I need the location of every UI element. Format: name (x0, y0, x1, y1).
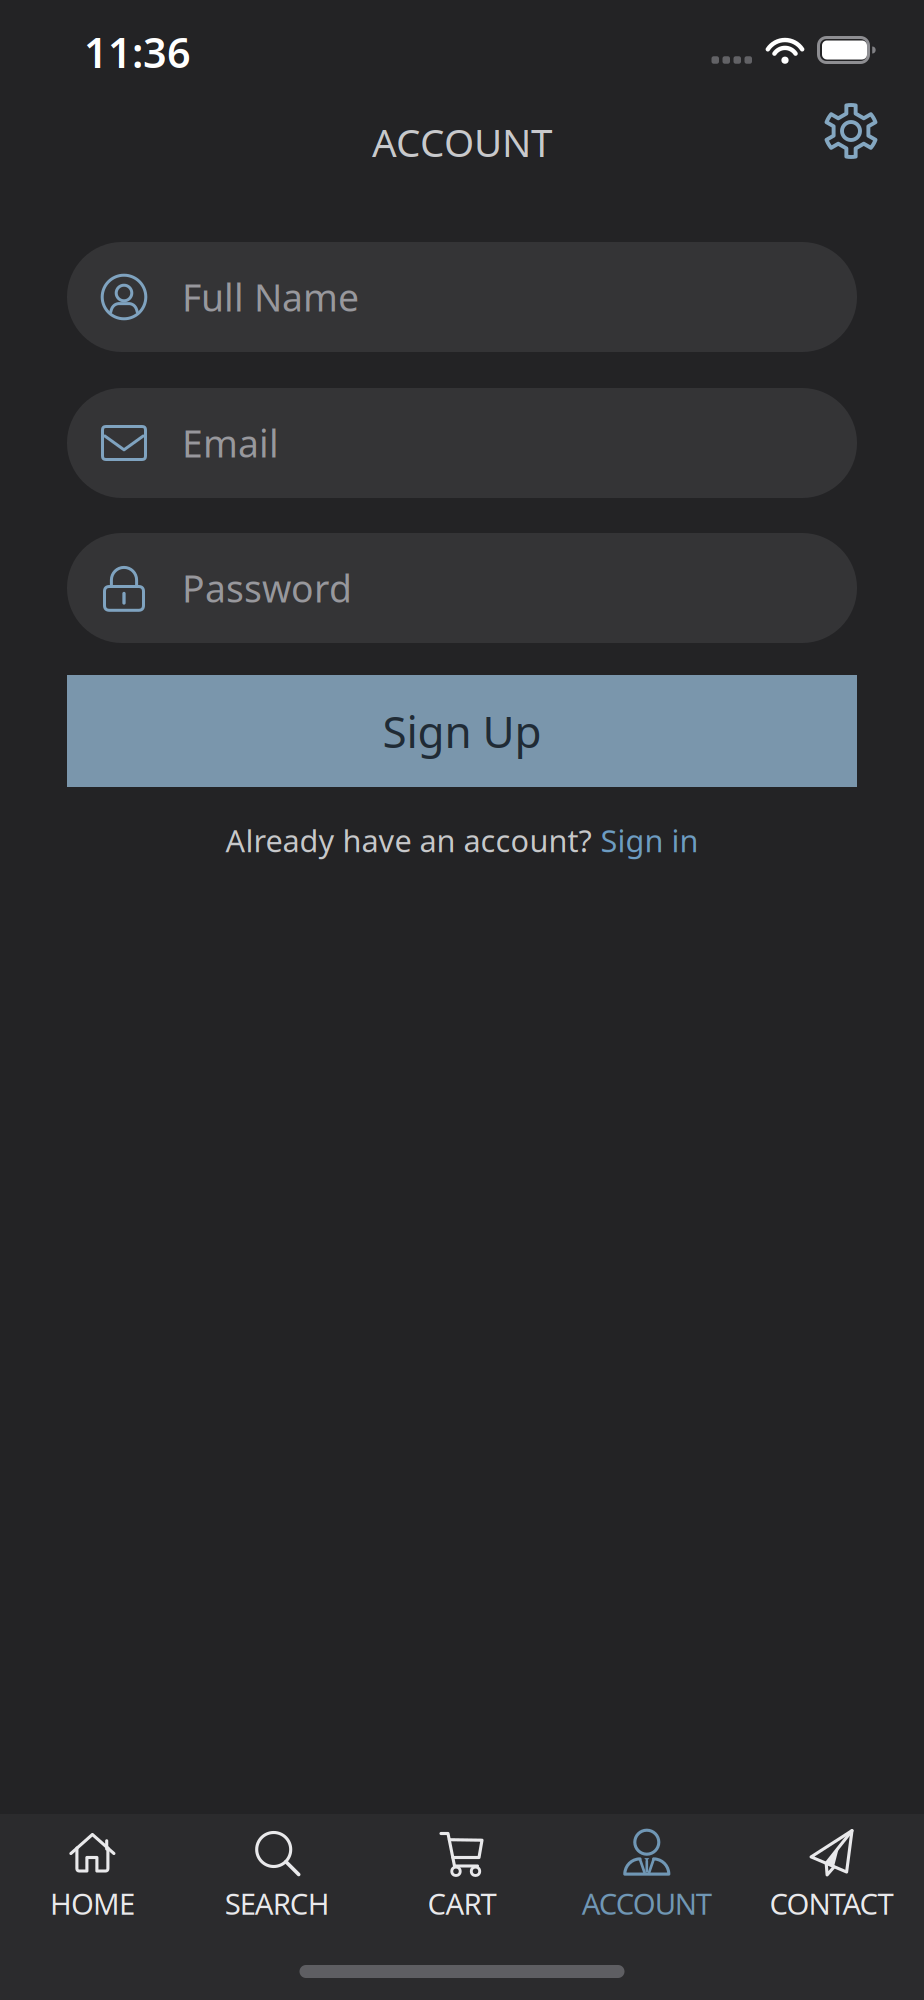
button[interactable]: SEARCH (185, 1830, 370, 1923)
staticText: ACCOUNT (582, 1884, 712, 1923)
staticText: Sign Up (382, 702, 541, 760)
button[interactable]: Full Name (67, 242, 857, 352)
button[interactable]: Sign Up (67, 675, 857, 787)
button[interactable]: Sign in (600, 820, 698, 861)
button[interactable]: CONTACT (739, 1830, 924, 1923)
button[interactable]: Email (67, 388, 857, 498)
button[interactable]: CART (370, 1830, 554, 1923)
button[interactable]: Settings (824, 104, 878, 158)
button[interactable]: ACCOUNT (554, 1830, 739, 1923)
button[interactable]: HOME (0, 1830, 185, 1923)
staticText: Already have an account? (225, 820, 591, 861)
staticText: Email (182, 418, 279, 468)
staticText: Full Name (182, 272, 359, 322)
button[interactable]: Password (67, 533, 857, 643)
staticText: Password (182, 563, 352, 613)
staticText: CART (427, 1884, 496, 1923)
staticText: Sign in (600, 820, 698, 861)
staticText: 11:36 (84, 25, 191, 79)
staticText: SEARCH (225, 1884, 330, 1923)
staticText: ACCOUNT (372, 116, 552, 168)
staticText: HOME (50, 1884, 135, 1923)
staticText: CONTACT (770, 1884, 894, 1923)
